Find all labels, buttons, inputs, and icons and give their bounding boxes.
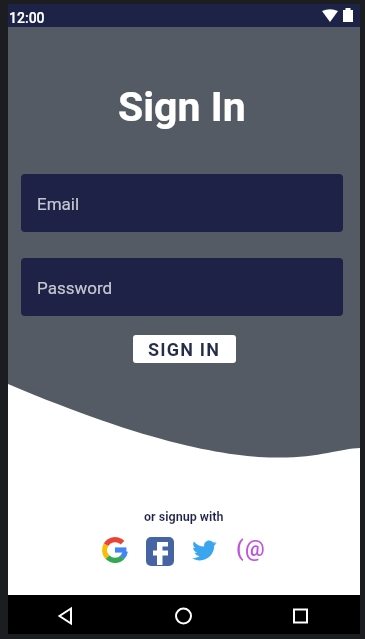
button[interactable]: Password [21, 258, 343, 316]
staticText: (@) [236, 536, 267, 564]
button[interactable] [8, 595, 125, 634]
button[interactable] [242, 595, 359, 634]
button[interactable] [125, 595, 242, 634]
staticText: SIGN IN [148, 339, 221, 360]
staticText: Password [37, 278, 113, 298]
button[interactable] [101, 536, 129, 564]
staticText: Email [37, 194, 80, 214]
button[interactable]: Email [21, 174, 343, 232]
staticText: Sign In [118, 83, 246, 131]
button[interactable] [146, 537, 174, 566]
staticText: or signup with [144, 509, 224, 524]
button[interactable]: (@) [236, 536, 267, 564]
button[interactable]: SIGN IN [133, 335, 236, 363]
button[interactable] [191, 536, 219, 564]
staticText: 12:00 [9, 10, 45, 26]
